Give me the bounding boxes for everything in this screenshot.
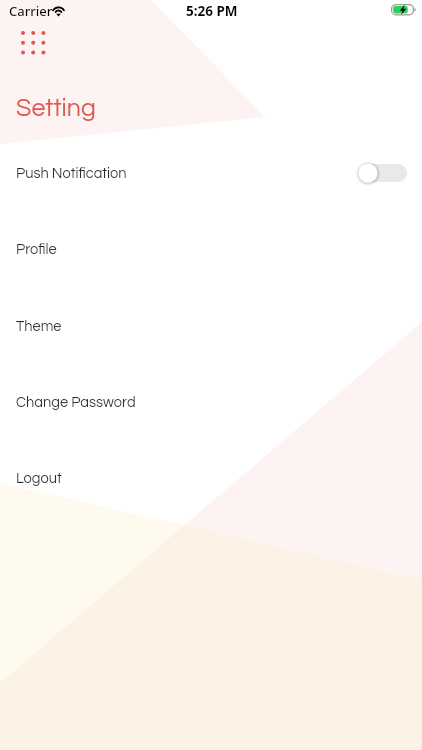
staticText: Push Notification <box>16 166 127 181</box>
staticText: Change Password <box>16 395 136 410</box>
staticText: Setting <box>16 95 96 121</box>
staticText: Theme <box>16 319 62 334</box>
staticText: Carrier <box>9 2 53 20</box>
staticText: Logout <box>16 471 62 486</box>
button[interactable]: Menu <box>17 27 49 58</box>
button[interactable]: Change Password <box>0 364 422 440</box>
button[interactable]: Push notification toggle <box>358 161 408 185</box>
staticText: Profile <box>16 242 57 257</box>
button[interactable]: Push Notification <box>0 135 422 211</box>
button[interactable]: Theme <box>0 288 422 364</box>
button[interactable]: Logout <box>0 440 422 516</box>
button[interactable]: Profile <box>0 211 422 287</box>
staticText: 5:26 PM <box>186 2 238 20</box>
